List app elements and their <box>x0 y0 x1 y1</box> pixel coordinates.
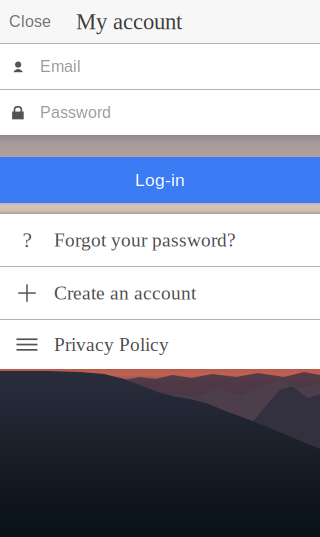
staticText: Log-in <box>135 170 185 190</box>
staticText: ? <box>22 228 31 252</box>
button[interactable]: Create an account <box>0 267 320 319</box>
staticText: Create an account <box>54 282 196 304</box>
staticText: Privacy Policy <box>54 334 169 355</box>
staticText: Password <box>40 104 111 121</box>
staticText: Email <box>40 58 81 75</box>
button[interactable]: Close <box>0 1 60 42</box>
button[interactable]: Password <box>0 90 320 135</box>
button[interactable]: Email <box>0 44 320 89</box>
button[interactable]: Log-in <box>0 157 320 203</box>
button[interactable]: Privacy Policy <box>0 320 320 369</box>
staticText: Close <box>9 13 51 30</box>
staticText: Forgot your password? <box>54 229 236 251</box>
staticText: My account <box>76 9 182 34</box>
button[interactable]: ? <box>0 214 320 266</box>
